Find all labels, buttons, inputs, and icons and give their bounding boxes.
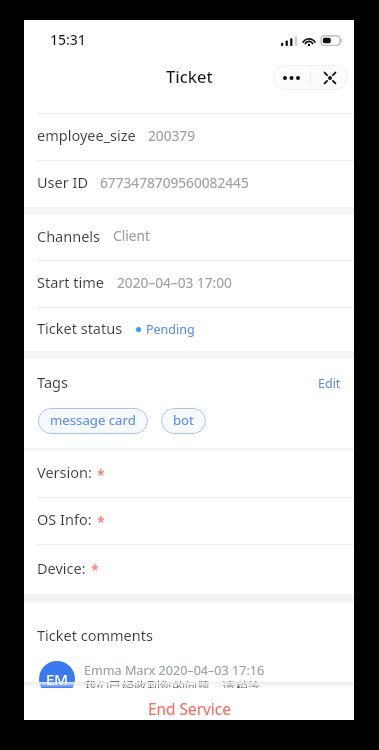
button[interactable]: Ticket status — [24, 308, 354, 351]
staticText: Ticket — [166, 65, 213, 87]
staticText: EM — [46, 669, 68, 689]
button[interactable]: More options — [273, 65, 310, 90]
button[interactable]: Close — [311, 65, 348, 90]
button[interactable]: Edit — [318, 375, 341, 392]
staticText: 2020–04–03 17:00 — [117, 273, 232, 292]
staticText: Version: — [37, 462, 92, 482]
staticText: Edit — [318, 375, 341, 392]
staticText: Ticket comments — [37, 625, 153, 645]
staticText: Client — [113, 226, 150, 245]
staticText: Emma Marx 2020–04–03 17:16 — [84, 662, 265, 679]
staticText: OS Info: — [37, 509, 92, 529]
staticText: 我们已经收到您的问题，请稍等 — [84, 679, 261, 695]
staticText: Pending — [146, 321, 195, 338]
staticText: * — [91, 560, 99, 579]
button[interactable]: message card — [38, 408, 148, 434]
staticText: * — [97, 512, 105, 531]
button[interactable]: End Service — [24, 688, 354, 720]
staticText: Start time — [37, 272, 105, 292]
button[interactable]: Device: — [24, 545, 354, 594]
staticText: 15:31 — [50, 30, 86, 49]
staticText: employee_size — [37, 125, 136, 145]
staticText: message card — [50, 411, 136, 429]
staticText: End Service — [148, 699, 231, 720]
staticText: Device: — [37, 558, 86, 578]
button[interactable]: User ID — [24, 161, 354, 207]
staticText: Tags — [37, 372, 68, 392]
staticText: 200379 — [148, 126, 195, 145]
staticText: User ID — [37, 172, 88, 192]
button[interactable]: Channels — [24, 215, 354, 260]
button[interactable]: Start time — [24, 261, 354, 307]
staticText: * — [97, 465, 105, 484]
button[interactable]: employee_size — [24, 114, 354, 160]
staticText: bot — [173, 411, 194, 429]
button[interactable]: Version: — [24, 451, 354, 497]
button[interactable]: bot — [161, 408, 206, 434]
staticText: 6773478709560082445 — [100, 173, 249, 192]
staticText: Channels — [37, 226, 101, 246]
staticText: Ticket status — [37, 318, 123, 338]
button[interactable]: OS Info: — [24, 498, 354, 544]
